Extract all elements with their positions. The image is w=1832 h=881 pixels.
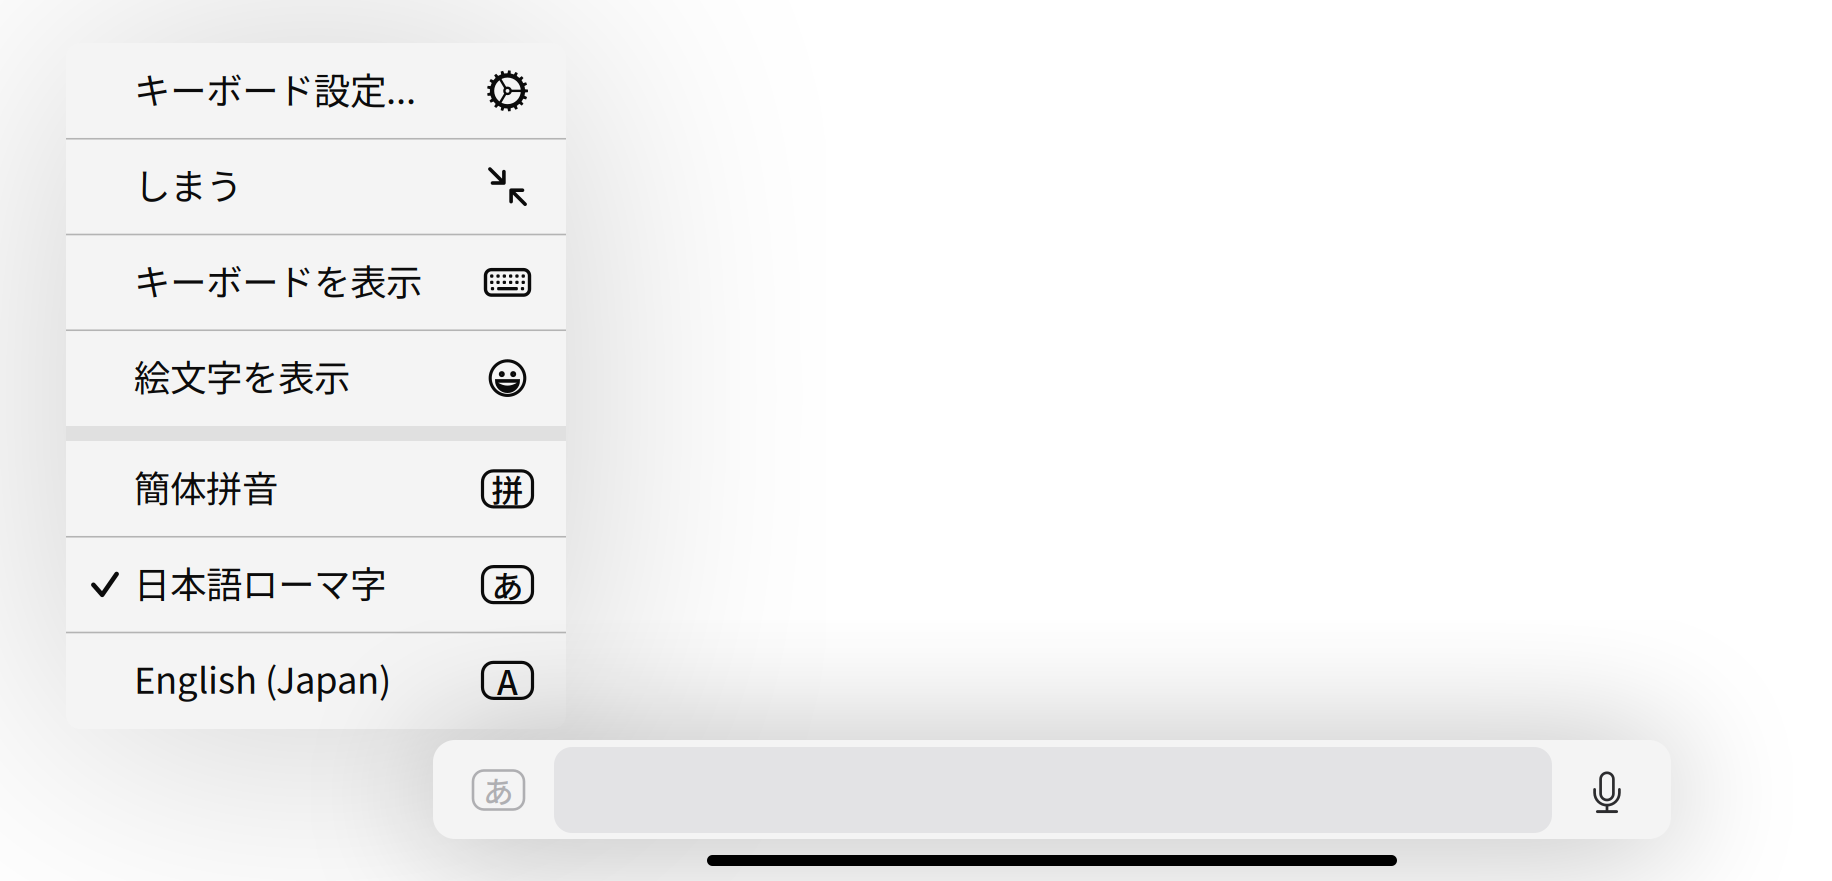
button[interactable] [66,441,566,537]
staticText: キーボードを表示 [134,253,422,306]
staticText: 簡体拼音 [134,460,278,513]
button[interactable] [66,330,566,426]
staticText: A [497,656,518,704]
button[interactable] [66,43,566,139]
button[interactable] [66,234,566,330]
staticText: 絵文字を表示 [134,349,350,402]
button[interactable] [66,537,566,633]
button[interactable]: Switch input mode [473,770,524,809]
staticText: あ [483,768,514,812]
staticText: キーボード設定... [134,62,416,115]
staticText: English (Japan) [134,651,391,704]
staticText: 日本語ローマ字 [134,556,386,608]
staticText: あ [491,561,523,608]
staticText: 拼 [491,466,523,512]
button[interactable] [66,139,566,235]
staticText: しまう [134,158,242,210]
button[interactable]: Dictation [1581,764,1633,822]
button[interactable] [66,632,566,728]
